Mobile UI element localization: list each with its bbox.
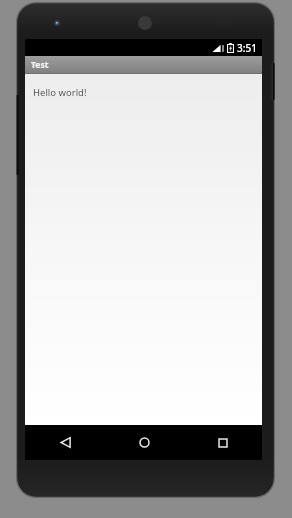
staticText: Test — [31, 59, 49, 71]
button[interactable]: Back — [40, 425, 90, 460]
button[interactable]: Recent apps — [198, 425, 248, 460]
button[interactable]: Test — [25, 56, 262, 74]
staticText: Hello world! — [33, 86, 87, 99]
staticText: 3:51 — [237, 41, 257, 55]
button[interactable]: Home — [119, 425, 169, 460]
